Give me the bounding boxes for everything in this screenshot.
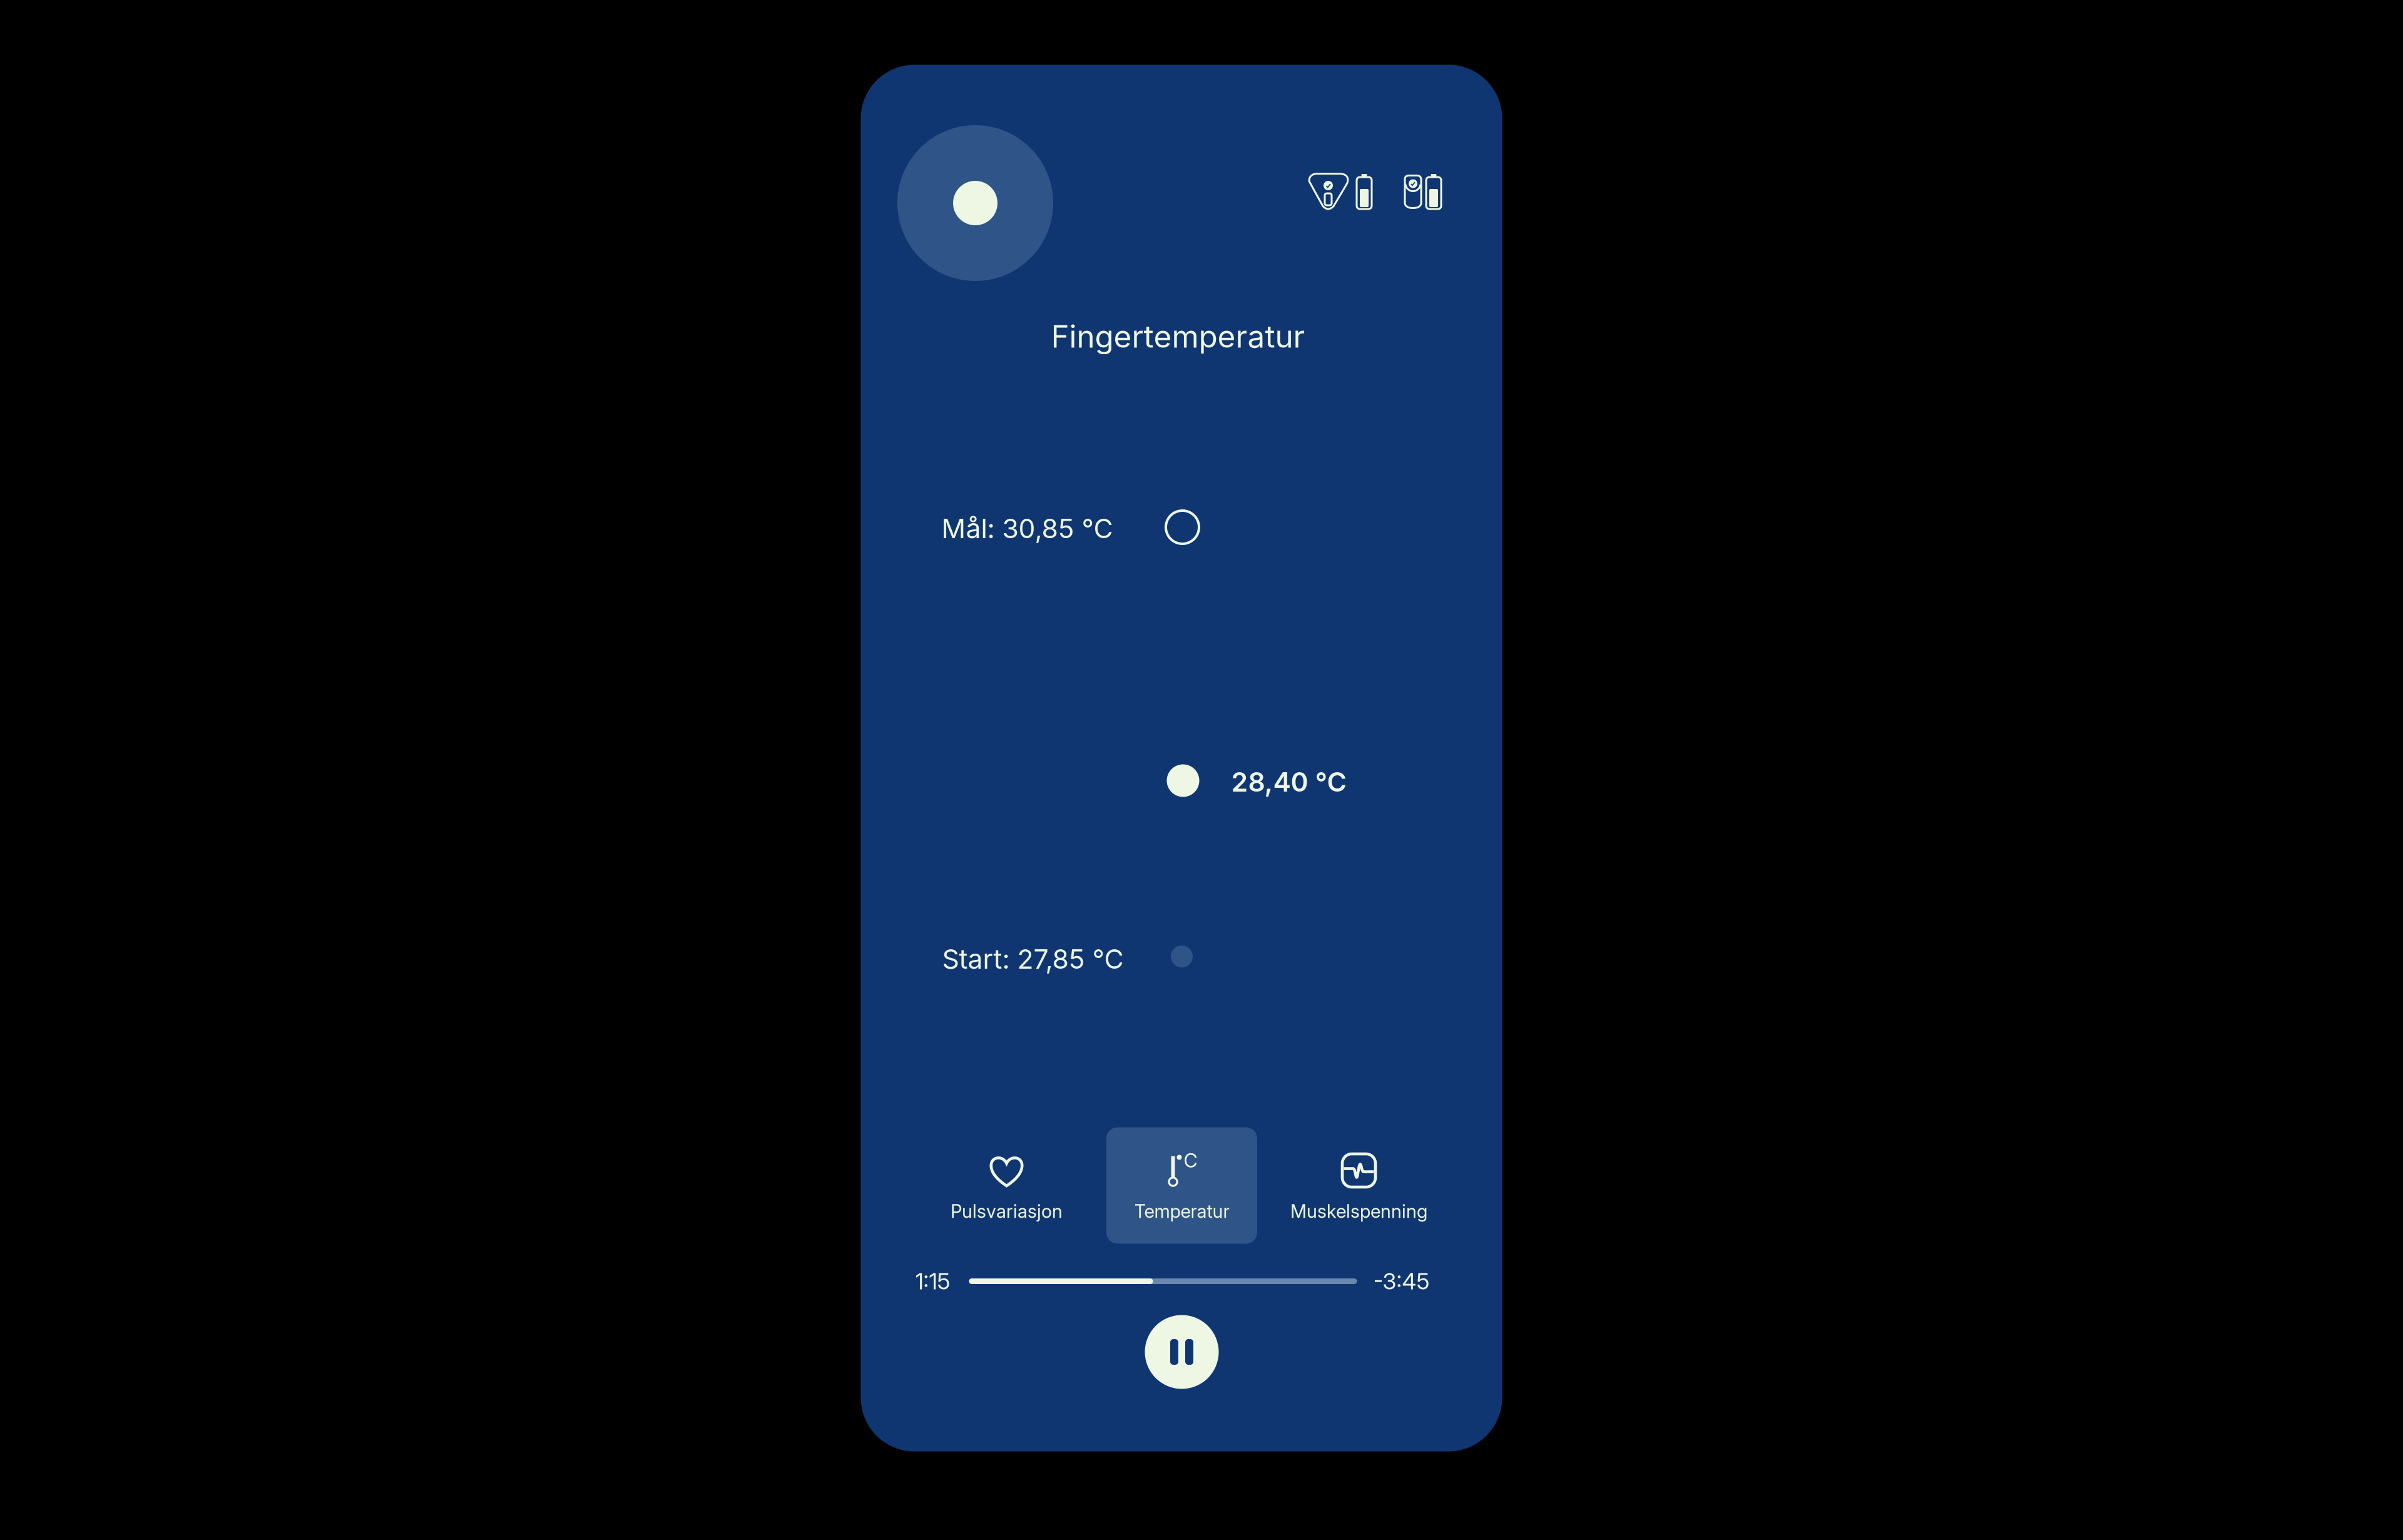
- staticText: 28,40 °C: [1231, 766, 1346, 798]
- staticText: Mål: 30,85 °C: [941, 512, 1113, 545]
- staticText: Temperatur: [1134, 1200, 1229, 1222]
- staticText: C: [1184, 1149, 1197, 1172]
- staticText: 1:15: [915, 1268, 950, 1295]
- button[interactable]: C: [1107, 1127, 1257, 1244]
- staticText: Fingertemperatur: [1051, 318, 1305, 355]
- button[interactable]: Pause: [1145, 1315, 1219, 1389]
- button[interactable]: Pulsvariasjon: [931, 1127, 1082, 1244]
- button[interactable]: Muskelspenning: [1284, 1127, 1434, 1244]
- staticText: -3:45: [1373, 1268, 1430, 1295]
- staticText: Start: 27,85 °C: [942, 943, 1124, 975]
- staticText: Pulsvariasjon: [951, 1200, 1063, 1222]
- staticText: Muskelspenning: [1290, 1200, 1427, 1222]
